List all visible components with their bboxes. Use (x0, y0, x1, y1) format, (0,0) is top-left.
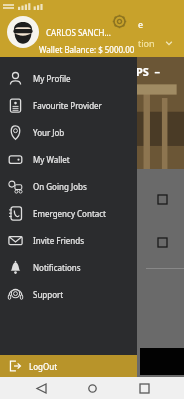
staticText: PS – (136, 64, 161, 79)
button[interactable]: Back (30, 377, 52, 399)
button[interactable]: Support (0, 281, 137, 308)
button[interactable]: Recents (133, 377, 155, 399)
button[interactable]: My Wallet (0, 146, 137, 173)
staticText: Wallet Balance: $ 5000.00 (39, 44, 135, 55)
staticText: tion (138, 37, 155, 49)
button[interactable]: Favourite Provider (0, 92, 137, 119)
button[interactable]: My Profile (0, 65, 137, 92)
button[interactable]: Checkbox (158, 195, 167, 204)
button[interactable]: Emergency Contact (0, 200, 137, 227)
staticText: Emergency Contact (33, 208, 106, 219)
staticText: On Going Jobs (33, 181, 87, 192)
button[interactable]: On Going Jobs (0, 173, 137, 200)
button[interactable]: Checkbox (158, 238, 167, 247)
button[interactable]: Notifications (0, 254, 137, 281)
staticText: Favourite Provider (33, 100, 102, 111)
staticText: Invite Friends (33, 235, 84, 246)
staticText: My Profile (33, 73, 71, 84)
staticText: My Wallet (33, 154, 70, 165)
staticText: e (138, 18, 144, 30)
button[interactable]: Settings (111, 13, 128, 30)
staticText: Your Job (33, 127, 65, 138)
button[interactable]: Your Job (0, 119, 137, 146)
button[interactable]: LogOut (0, 355, 137, 377)
staticText: Support (33, 289, 64, 300)
button[interactable]: Invite Friends (0, 227, 137, 254)
button[interactable]: Home (81, 377, 103, 399)
staticText: CARLOS SANCH... (46, 27, 111, 38)
button[interactable]: CARLOS SANCH... (0, 16, 137, 48)
staticText: Notifications (33, 262, 81, 273)
staticText: LogOut (29, 361, 58, 372)
